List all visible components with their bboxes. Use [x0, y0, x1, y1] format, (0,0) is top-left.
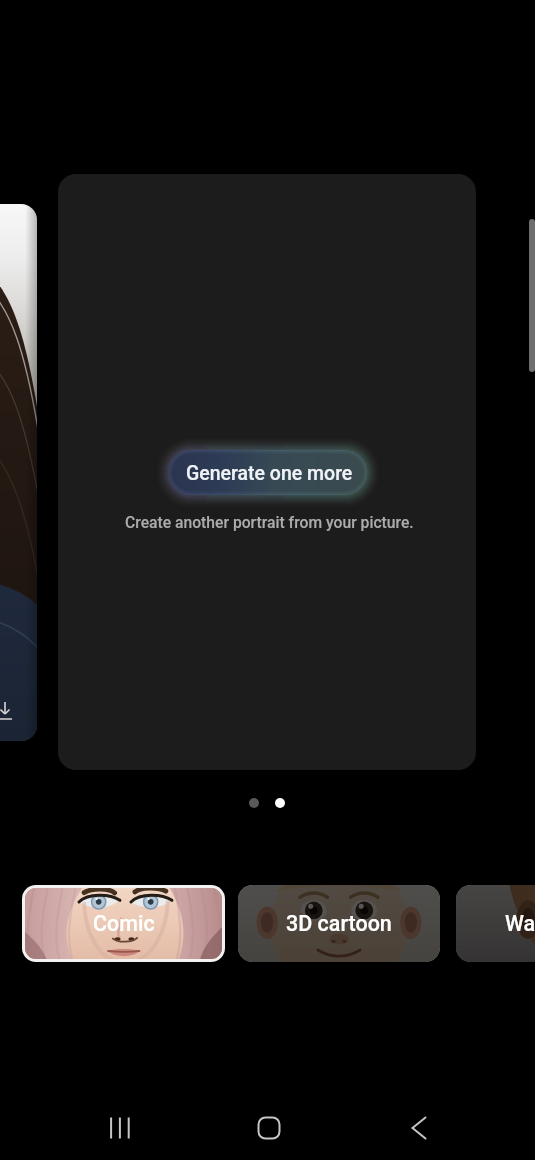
button[interactable]: 3D cartoon: [238, 885, 440, 962]
button[interactable]: Download: [0, 694, 22, 728]
staticText: Comic: [93, 911, 155, 936]
staticText: Generate one more: [186, 462, 353, 485]
button[interactable]: Back: [381, 1092, 453, 1160]
button[interactable]: Comic: [25, 888, 222, 959]
staticText: Watercolor: [505, 911, 535, 936]
button[interactable]: Watercolor: [456, 885, 535, 962]
staticText: 3D cartoon: [286, 911, 392, 936]
button[interactable]: Home: [233, 1092, 305, 1160]
staticText: Create another portrait from your pictur…: [125, 513, 414, 531]
button[interactable]: Generate one more: [169, 450, 367, 495]
button[interactable]: Recents: [83, 1092, 155, 1160]
button[interactable]: Download: [0, 204, 37, 741]
